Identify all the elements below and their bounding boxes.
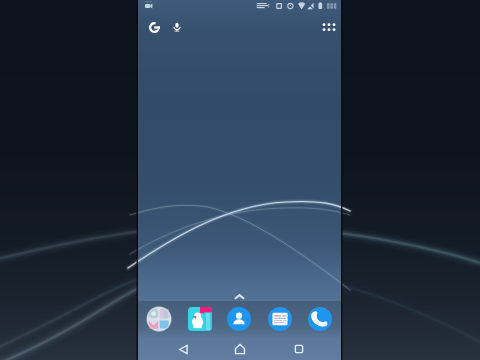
- button[interactable]: Photos: [184, 303, 216, 335]
- button[interactable]: Home: [226, 338, 254, 360]
- button[interactable]: Folder: [143, 303, 175, 335]
- button[interactable]: Phone: [304, 303, 336, 335]
- button[interactable]: Google Search: [142, 15, 166, 39]
- button[interactable]: Back: [169, 338, 197, 360]
- button[interactable]: All apps: [315, 14, 341, 40]
- button[interactable]: Messages: [264, 303, 296, 335]
- button[interactable]: Recent apps: [285, 338, 313, 360]
- button[interactable]: Open app drawer: [232, 290, 246, 302]
- button[interactable]: Voice search: [165, 15, 189, 39]
- button[interactable]: Contacts: [223, 303, 255, 335]
